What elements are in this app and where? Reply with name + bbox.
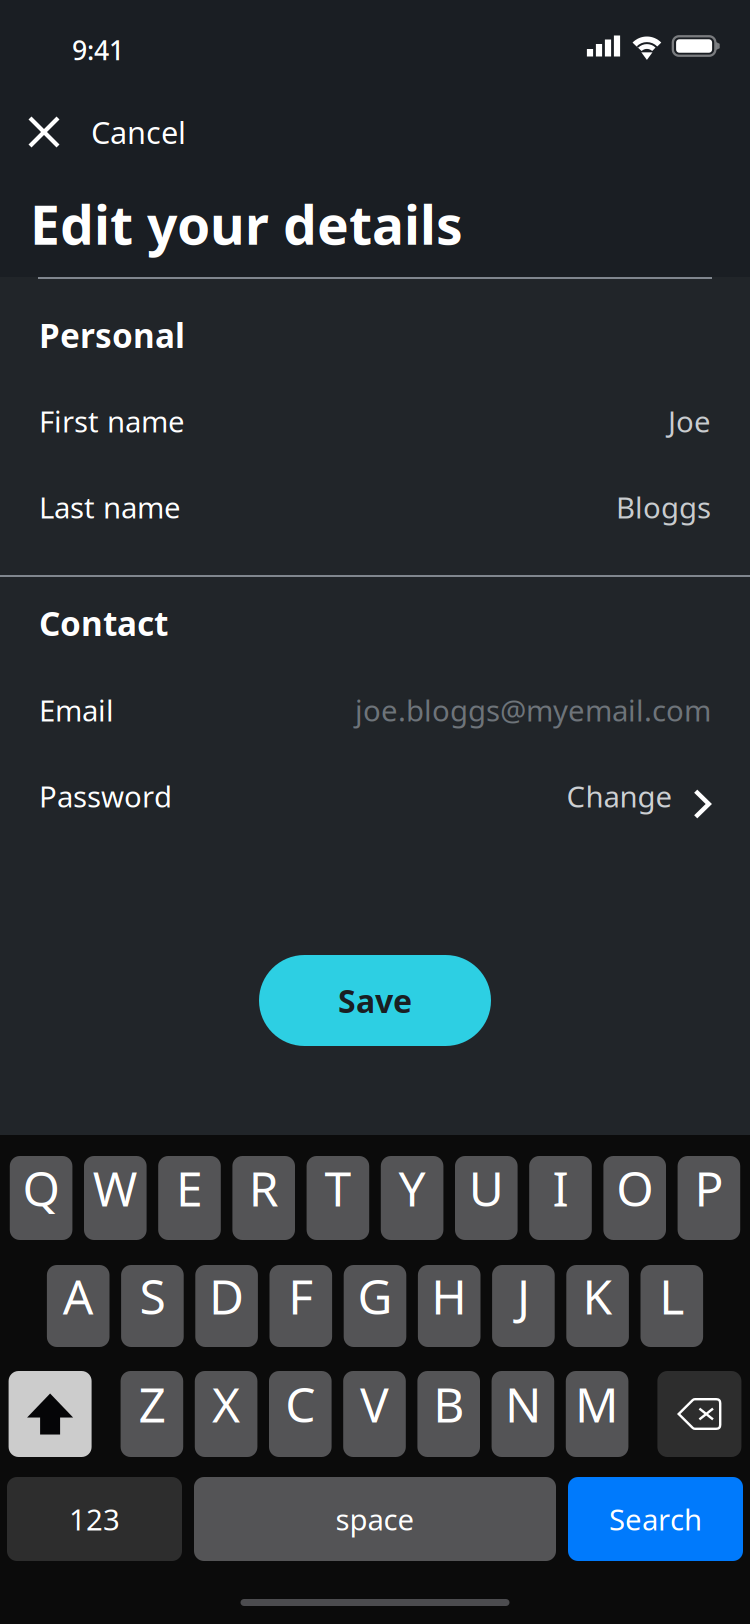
button[interactable]: Password xyxy=(39,779,711,813)
button[interactable]: S xyxy=(121,1265,184,1347)
staticText: V xyxy=(360,1372,389,1436)
button[interactable]: C xyxy=(269,1371,332,1457)
staticText: Personal xyxy=(39,313,185,357)
staticText: R xyxy=(249,1156,279,1220)
button[interactable]: 123 xyxy=(7,1477,182,1561)
button[interactable]: R xyxy=(232,1156,295,1240)
button[interactable]: M xyxy=(566,1371,628,1457)
button[interactable]: Z xyxy=(121,1371,183,1457)
staticText: M xyxy=(575,1372,619,1436)
staticText: G xyxy=(357,1264,392,1328)
staticText: Email xyxy=(39,690,114,729)
staticText: space xyxy=(335,1499,414,1538)
button[interactable]: K xyxy=(566,1265,629,1347)
staticText: Last name xyxy=(39,487,181,526)
button[interactable]: B xyxy=(417,1371,480,1457)
button[interactable]: Shift xyxy=(9,1371,92,1457)
staticText: C xyxy=(285,1372,315,1436)
staticText: Bloggs xyxy=(616,487,711,526)
button[interactable]: Q xyxy=(10,1156,72,1240)
staticText: T xyxy=(324,1156,351,1220)
button[interactable]: E xyxy=(158,1156,221,1240)
staticText: Search xyxy=(609,1499,702,1538)
staticText: First name xyxy=(39,401,185,440)
button[interactable]: Cancel xyxy=(30,117,186,147)
staticText: Joe xyxy=(668,401,711,440)
staticText: O xyxy=(616,1156,653,1220)
button[interactable]: space xyxy=(194,1477,556,1561)
staticText: Contact xyxy=(39,601,168,645)
button[interactable]: L xyxy=(640,1265,703,1347)
staticText: N xyxy=(505,1372,541,1436)
staticText: K xyxy=(583,1264,613,1328)
staticText: J xyxy=(517,1264,530,1328)
staticText: 123 xyxy=(69,1499,120,1538)
staticText: U xyxy=(469,1156,504,1220)
staticText: D xyxy=(209,1264,244,1328)
button[interactable]: G xyxy=(344,1265,406,1347)
staticText: L xyxy=(659,1264,684,1328)
button[interactable]: First name xyxy=(39,404,711,438)
staticText: B xyxy=(433,1372,464,1436)
button[interactable]: X xyxy=(195,1371,257,1457)
staticText: Z xyxy=(138,1372,165,1436)
staticText: Save xyxy=(338,979,412,1022)
button[interactable]: F xyxy=(269,1265,332,1347)
staticText: joe.bloggs@myemail.com xyxy=(355,690,711,729)
button[interactable]: I xyxy=(529,1156,592,1240)
button[interactable]: Search xyxy=(568,1477,743,1561)
button[interactable]: H xyxy=(418,1265,480,1347)
button[interactable]: A xyxy=(47,1265,109,1347)
button[interactable]: U xyxy=(455,1156,518,1240)
button[interactable]: Delete xyxy=(657,1371,741,1457)
staticText: Q xyxy=(23,1156,60,1220)
button[interactable]: Save xyxy=(259,955,491,1046)
button[interactable]: D xyxy=(195,1265,258,1347)
staticText: P xyxy=(694,1156,723,1220)
staticText: Change xyxy=(566,776,672,815)
staticText: 9:41 xyxy=(72,32,124,68)
staticText: Password xyxy=(39,776,172,815)
staticText: A xyxy=(63,1264,94,1328)
staticText: F xyxy=(288,1264,313,1328)
staticText: Cancel xyxy=(91,112,186,152)
staticText: I xyxy=(552,1156,568,1220)
button[interactable]: P xyxy=(678,1156,740,1240)
button[interactable]: O xyxy=(603,1156,666,1240)
staticText: X xyxy=(212,1372,240,1436)
staticText: W xyxy=(93,1156,138,1220)
button[interactable]: J xyxy=(492,1265,555,1347)
staticText: H xyxy=(431,1264,467,1328)
button[interactable]: V xyxy=(343,1371,406,1457)
staticText: S xyxy=(139,1264,165,1328)
button[interactable]: N xyxy=(492,1371,554,1457)
staticText: E xyxy=(176,1156,203,1220)
staticText: Y xyxy=(399,1156,426,1220)
button[interactable]: Y xyxy=(381,1156,443,1240)
staticText: Edit your details xyxy=(30,189,463,259)
button[interactable]: Email xyxy=(39,693,711,727)
button[interactable]: T xyxy=(307,1156,369,1240)
button[interactable]: W xyxy=(84,1156,147,1240)
button[interactable]: Last name xyxy=(39,490,711,524)
